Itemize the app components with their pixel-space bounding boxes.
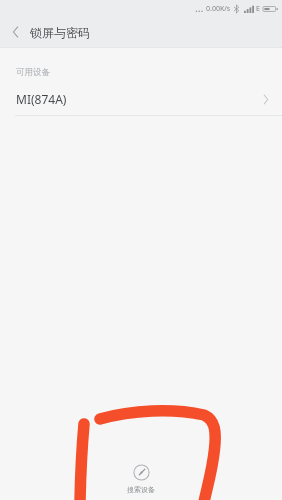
staticText: E (256, 4, 260, 14)
button[interactable]: 搜索设备 (115, 460, 167, 497)
staticText: 搜索设备 (127, 485, 155, 494)
button[interactable]: Back (0, 17, 30, 47)
staticText: 0.00K/s (206, 4, 231, 14)
staticText: 锁屏与密码 (30, 25, 90, 40)
staticText: MI(874A) (16, 91, 67, 107)
staticText: 可用设备 (16, 67, 50, 78)
button[interactable]: MI(874A) (0, 83, 282, 115)
